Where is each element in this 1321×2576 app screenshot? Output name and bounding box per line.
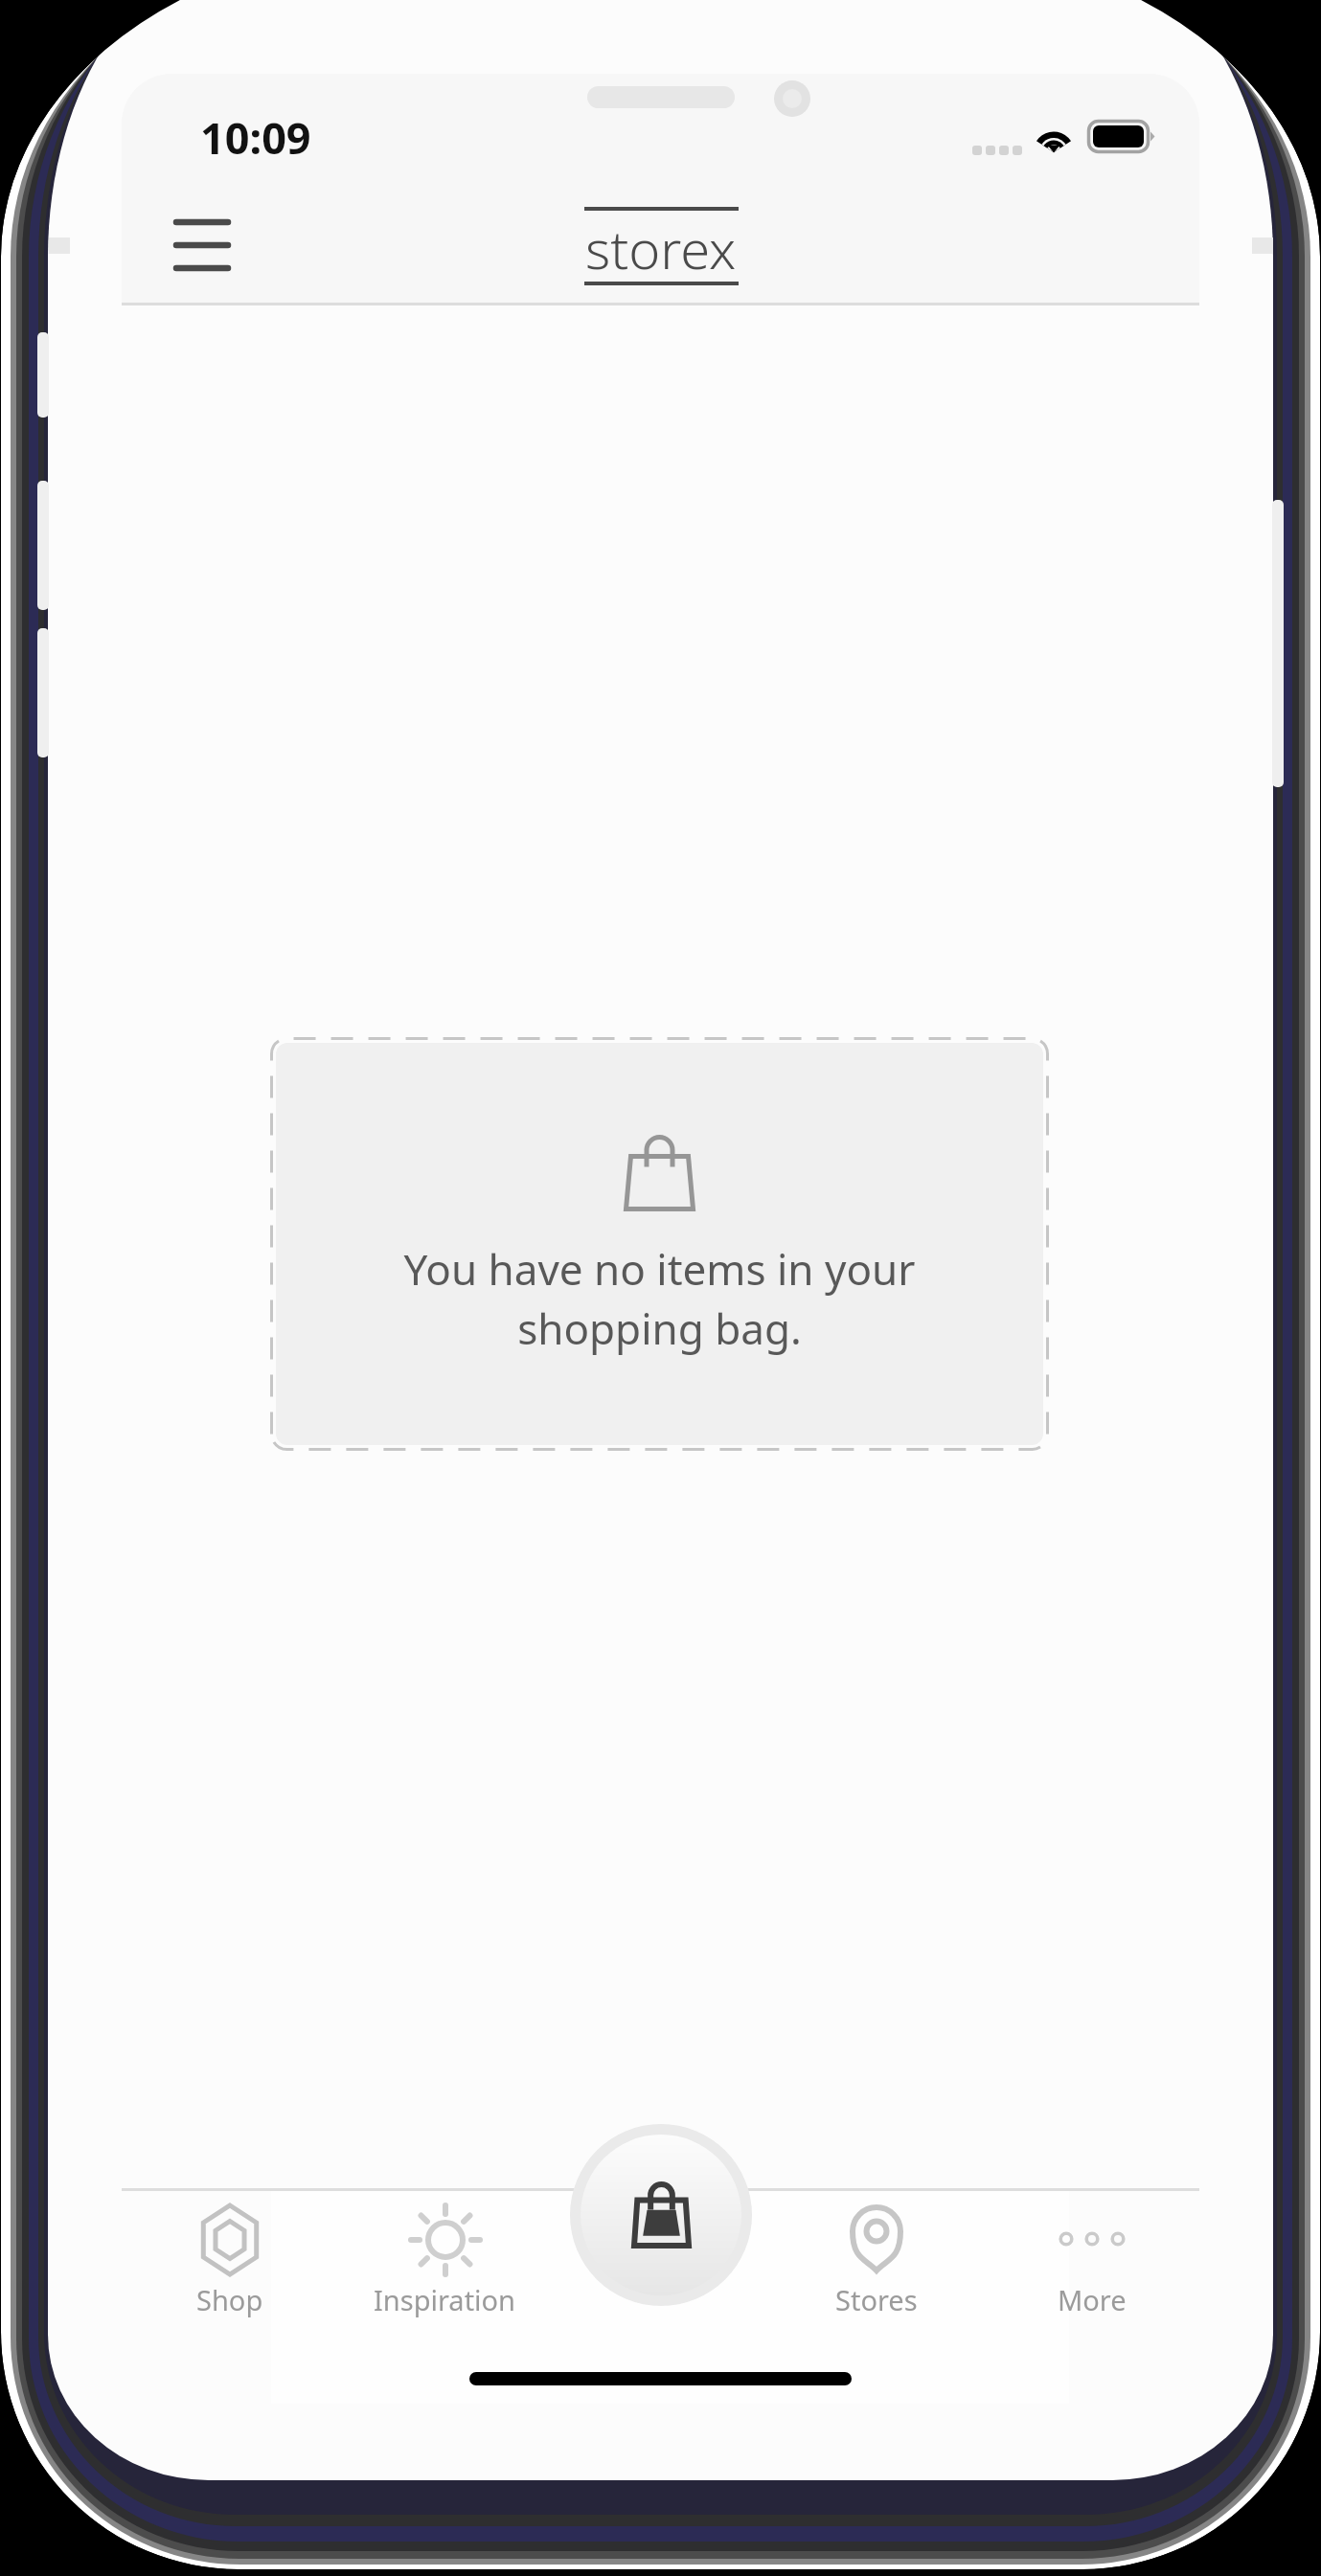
button[interactable]: storex [551, 207, 771, 285]
staticText: Stores [835, 2281, 918, 2318]
staticText: You have no items in your shopping bag. [270, 1240, 1049, 1357]
button[interactable]: Menu [145, 195, 260, 295]
staticText: More [1058, 2281, 1127, 2318]
staticText: Inspiration [374, 2281, 516, 2318]
staticText: storex [585, 212, 737, 284]
staticText: 10:09 [200, 108, 311, 167]
button[interactable]: Shopping bag [570, 2124, 752, 2306]
button[interactable]: More [984, 2191, 1199, 2373]
staticText: Shop [196, 2281, 263, 2318]
button[interactable]: Inspiration [337, 2191, 553, 2373]
button[interactable]: Shop [122, 2191, 337, 2373]
button[interactable]: Stores [768, 2191, 984, 2373]
button[interactable]: You have no items in your shopping bag. [270, 1037, 1049, 1451]
